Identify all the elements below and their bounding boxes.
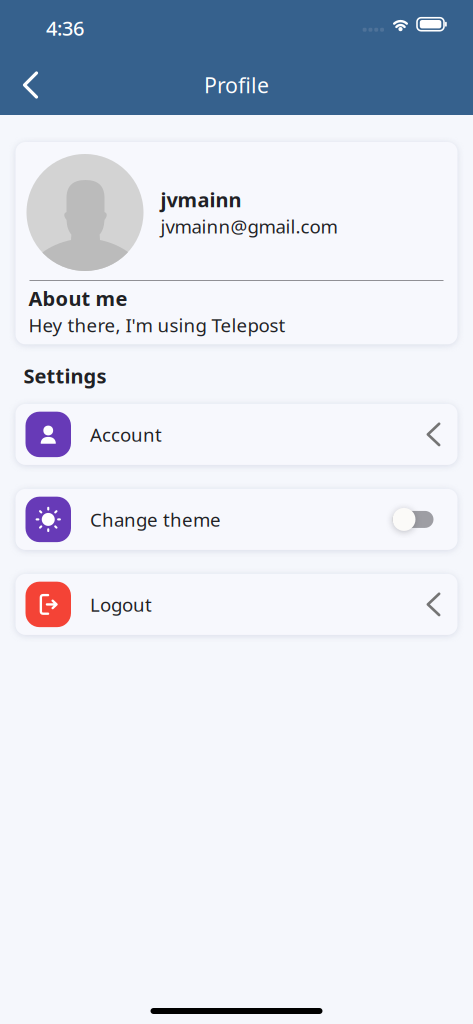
staticText: Logout (90, 592, 152, 617)
button[interactable]: Change theme (15, 489, 457, 550)
staticText: Hey there, I'm using Telepost (28, 313, 285, 337)
staticText: 4:36 (46, 15, 84, 41)
staticText: jvmainn@gmail.com (160, 214, 337, 239)
staticText: jvmainn (160, 186, 241, 213)
staticText: Change theme (90, 507, 221, 532)
staticText: Settings (23, 362, 106, 389)
button[interactable]: Account (15, 404, 457, 465)
staticText: About me (28, 285, 127, 312)
button[interactable]: Logout (15, 574, 457, 635)
staticText: Account (90, 422, 162, 447)
button[interactable]: Back (0, 59, 56, 111)
staticText: Profile (204, 71, 269, 99)
